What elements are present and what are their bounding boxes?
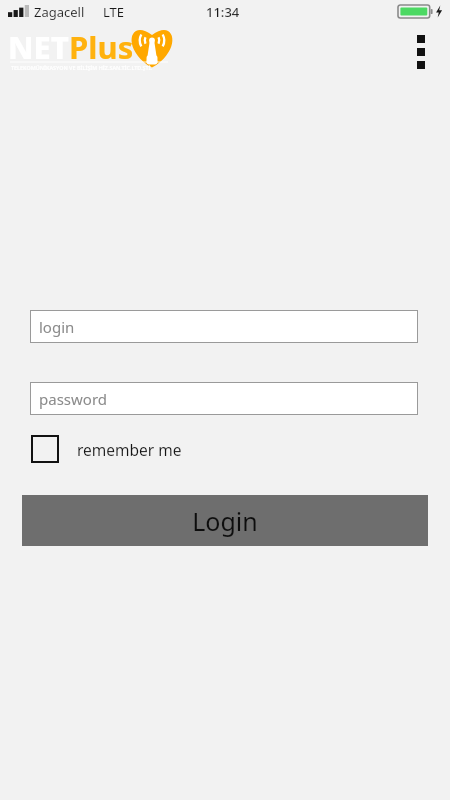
button[interactable]: Login field <box>30 310 418 343</box>
button[interactable]: Password field <box>30 382 418 415</box>
staticText: password <box>39 389 107 409</box>
staticText: NET <box>8 26 69 68</box>
staticText: TELEKOMÜNİKASYON VE BİLİŞİM HİZ.SAN.TİC.… <box>11 64 153 71</box>
button[interactable]: Login <box>22 495 428 546</box>
button[interactable]: remember me <box>26 430 226 468</box>
staticText: login <box>39 317 75 337</box>
staticText: Zagacell <box>34 3 85 21</box>
staticText: Login <box>192 504 258 538</box>
staticText: remember me <box>77 439 182 460</box>
staticText: LTE <box>103 3 125 21</box>
button[interactable]: More options <box>400 28 442 76</box>
staticText: Plus <box>69 26 134 68</box>
staticText: 11:34 <box>206 3 240 21</box>
